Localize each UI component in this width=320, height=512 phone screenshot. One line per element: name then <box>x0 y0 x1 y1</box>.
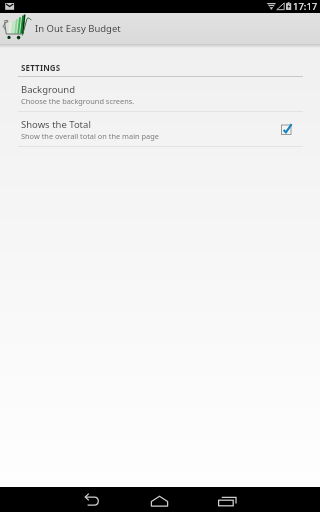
button[interactable]: Background <box>0 77 320 111</box>
button[interactable]: Navigate up <box>0 13 34 44</box>
staticText: 17:17 <box>293 0 318 13</box>
button[interactable]: Home <box>136 487 184 512</box>
staticText: Background <box>21 83 76 96</box>
staticText: Choose the background screens. <box>21 96 135 106</box>
staticText: Show the overall total on the main page <box>21 131 159 141</box>
staticText: In Out Easy Budget <box>35 22 121 35</box>
staticText: SETTINGS <box>21 62 61 73</box>
button[interactable]: Recent apps <box>203 487 251 512</box>
staticText: Shows the Total <box>21 118 91 131</box>
button[interactable]: Back <box>69 487 117 512</box>
button[interactable]: Shows the Total <box>0 112 320 146</box>
